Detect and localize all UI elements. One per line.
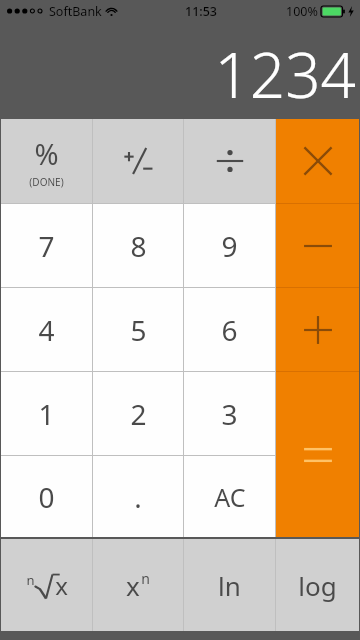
staticText: 1234	[214, 32, 356, 116]
button[interactable]: Logarithm	[276, 539, 359, 631]
button[interactable]: Percent, done	[1, 119, 92, 203]
button[interactable]: 6	[184, 288, 275, 371]
staticText: 2	[130, 395, 147, 433]
staticText: log	[298, 568, 337, 603]
staticText: n	[26, 571, 35, 589]
staticText: 6	[221, 311, 238, 349]
button[interactable]: 8	[93, 204, 183, 287]
staticText: AC	[214, 480, 246, 514]
staticText: 11:53	[185, 3, 218, 20]
button[interactable]: Add	[276, 288, 359, 371]
staticText: 8	[130, 227, 147, 265]
button[interactable]: 2	[93, 372, 183, 455]
button[interactable]: Equals	[276, 372, 359, 537]
button[interactable]: 1	[1, 372, 92, 455]
button[interactable]: 7	[1, 204, 92, 287]
staticText: x	[55, 569, 68, 602]
staticText: 3	[221, 395, 238, 433]
staticText: x	[126, 568, 140, 603]
button[interactable]: x to the power n	[93, 539, 183, 631]
staticText: 0	[38, 478, 55, 516]
button[interactable]: Natural logarithm	[184, 539, 275, 631]
button[interactable]: .	[93, 456, 183, 537]
button[interactable]: 5	[93, 288, 183, 371]
staticText: SoftBank	[49, 3, 102, 20]
button[interactable]: AC	[184, 456, 275, 537]
button[interactable]: 9	[184, 204, 275, 287]
button[interactable]: 3	[184, 372, 275, 455]
button[interactable]: Multiply	[276, 119, 359, 203]
staticText: 1	[38, 395, 55, 433]
staticText: 100%	[286, 3, 318, 20]
button[interactable]: Divide	[184, 119, 275, 203]
staticText: n	[141, 569, 150, 588]
staticText: 9	[221, 227, 238, 265]
button[interactable]: Plus minus sign	[93, 119, 183, 203]
staticText: .	[134, 478, 142, 516]
staticText: %	[34, 134, 59, 173]
staticText: 4	[38, 311, 55, 349]
staticText: 7	[38, 227, 55, 265]
staticText: (DONE)	[29, 175, 64, 189]
button[interactable]: 0	[1, 456, 92, 537]
staticText: 5	[130, 311, 147, 349]
button[interactable]: Subtract	[276, 204, 359, 287]
button[interactable]: 4	[1, 288, 92, 371]
button[interactable]: nth root of x	[1, 539, 92, 631]
staticText: ln	[218, 568, 241, 603]
